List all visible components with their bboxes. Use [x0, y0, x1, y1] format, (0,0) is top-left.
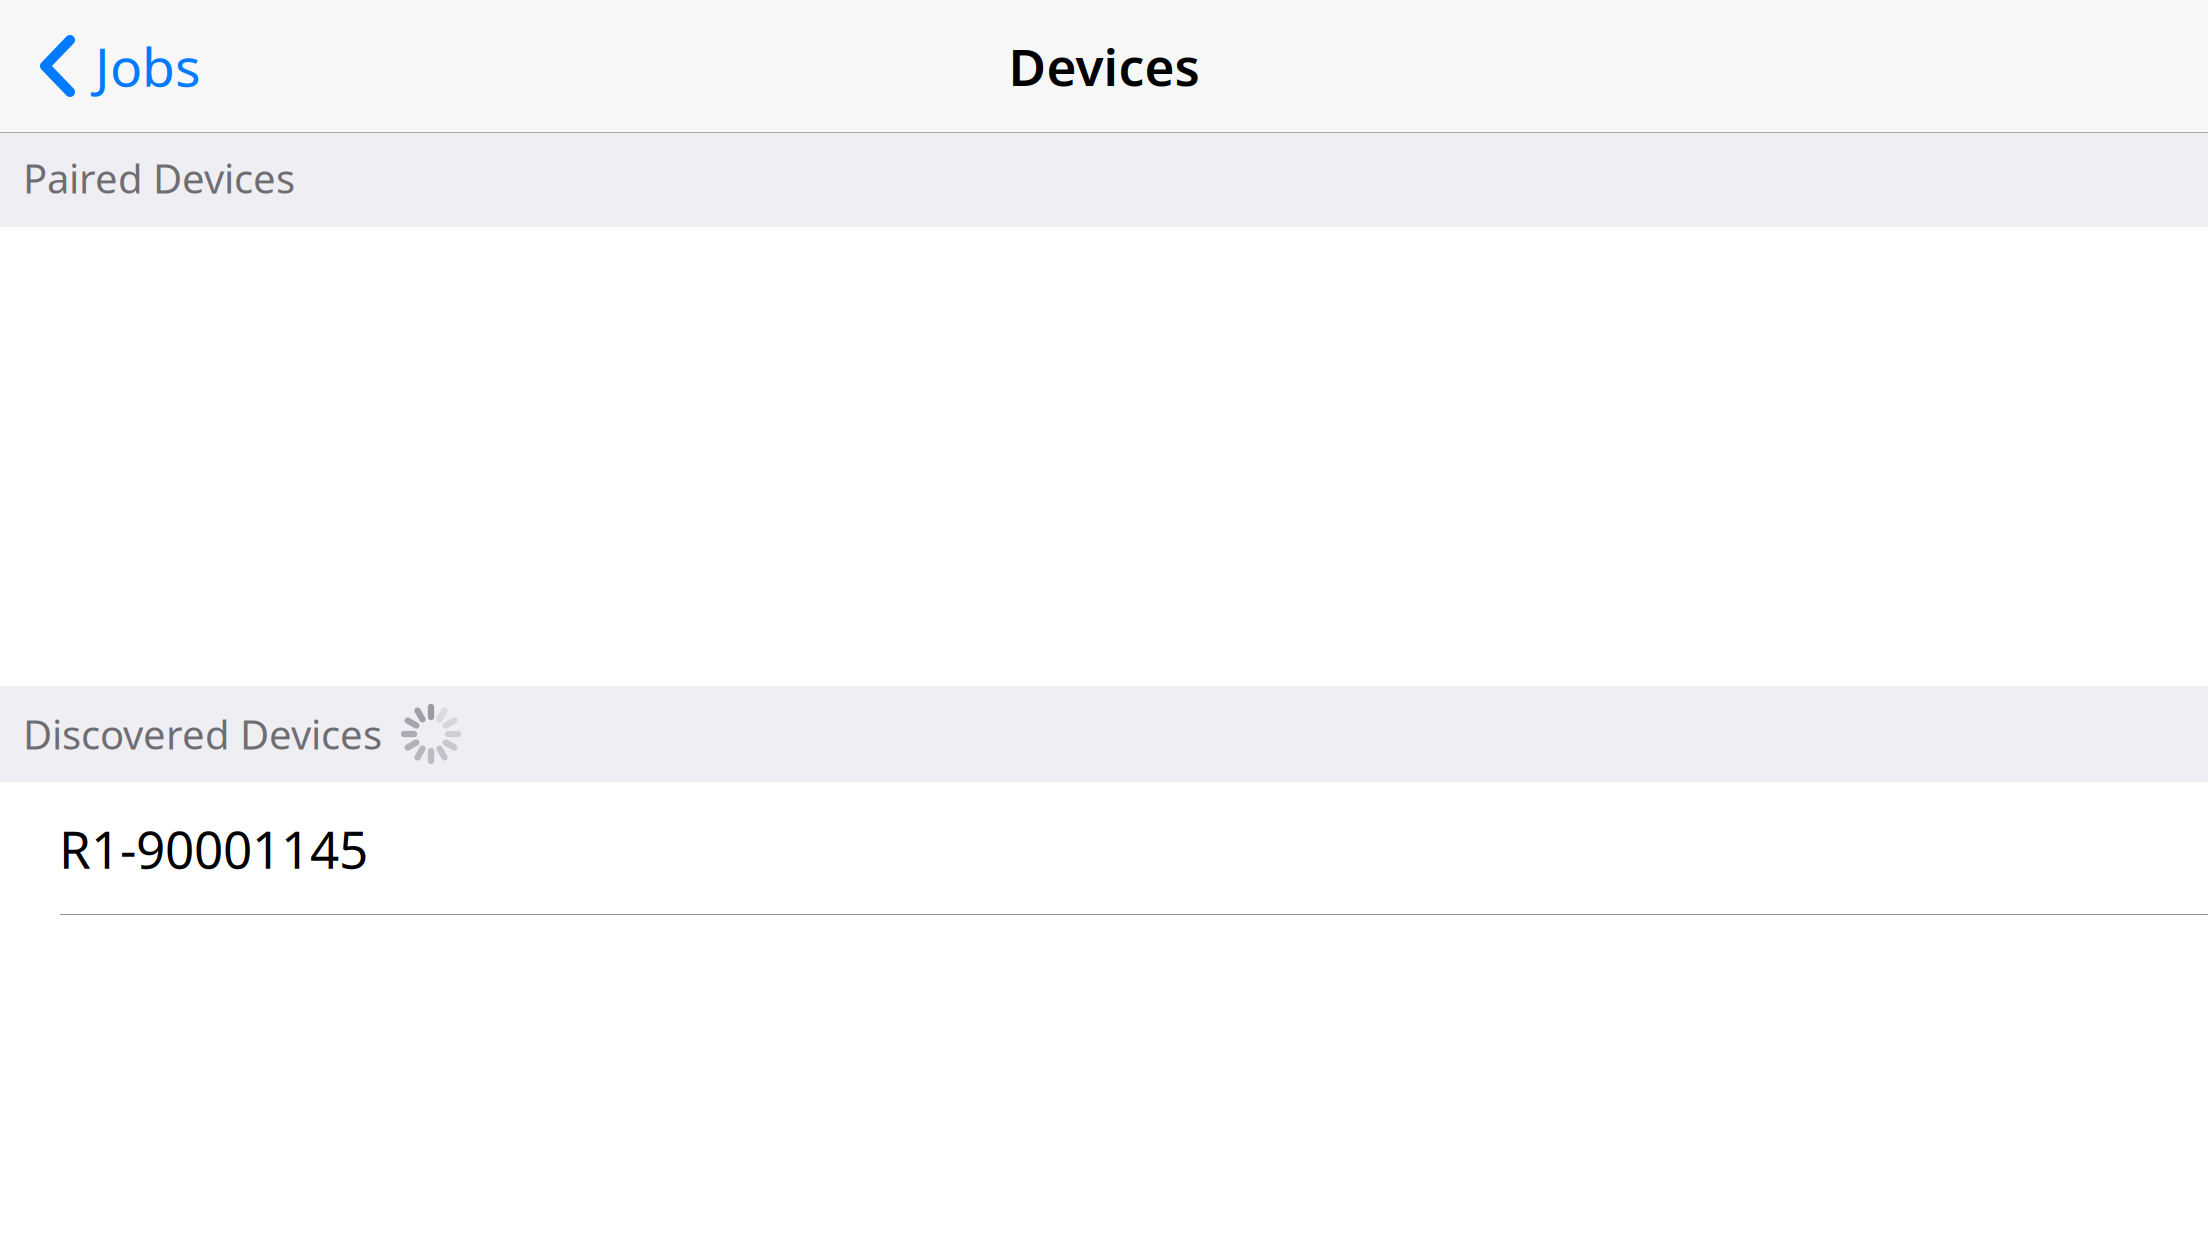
button[interactable]: Back to Jobs [0, 0, 225, 131]
staticText: R1-90001145 [59, 814, 368, 884]
button[interactable]: R1-90001145 [0, 782, 2208, 915]
staticText: Devices [1008, 31, 1199, 101]
staticText: Jobs [95, 30, 201, 102]
staticText: Discovered Devices [23, 707, 382, 761]
staticText: Paired Devices [23, 151, 295, 205]
